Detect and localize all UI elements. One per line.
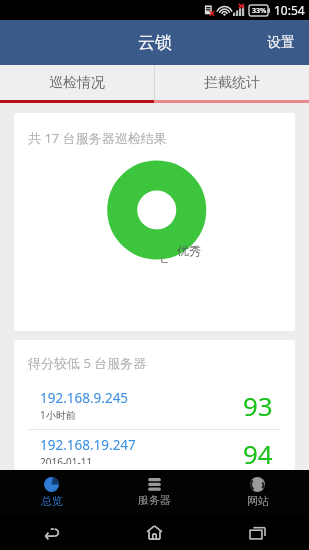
- button[interactable]: 网站: [206, 470, 309, 515]
- staticText: 192.168.9.245: [40, 389, 129, 407]
- button[interactable]: 192.168.9.245: [14, 382, 295, 429]
- staticText: 服务器: [138, 493, 171, 507]
- staticText: 192.168.19.247: [40, 436, 136, 454]
- button[interactable]: 共 17 台服务器巡检结果: [14, 113, 295, 331]
- button[interactable]: 总览: [0, 470, 103, 515]
- button[interactable]: Home: [103, 515, 206, 550]
- staticText: 共 17 台服务器巡检结果: [28, 129, 167, 147]
- button[interactable]: 192.168.19.247: [14, 430, 295, 470]
- button[interactable]: Back: [0, 515, 103, 550]
- staticText: 2016-01-11: [40, 455, 93, 464]
- staticText: 得分较低 5 台服务器: [28, 354, 147, 372]
- staticText: 总览: [41, 494, 63, 508]
- staticText: 网站: [247, 494, 269, 508]
- staticText: 设置: [267, 34, 295, 52]
- staticText: 拦截统计: [204, 74, 260, 92]
- staticText: 云锁: [138, 32, 172, 53]
- staticText: 93: [243, 388, 273, 423]
- button[interactable]: 服务器: [103, 470, 206, 515]
- staticText: 10:54: [274, 2, 305, 18]
- button[interactable]: 拦截统计: [155, 65, 309, 100]
- staticText: 33%: [252, 6, 267, 16]
- staticText: 94: [243, 436, 273, 464]
- staticText: 优秀: [177, 243, 201, 258]
- button[interactable]: 巡检情况: [0, 65, 154, 100]
- button[interactable]: Recent apps: [206, 515, 309, 550]
- button[interactable]: 设置: [253, 20, 309, 65]
- staticText: 1小时前: [40, 408, 76, 422]
- staticText: 巡检情况: [49, 74, 105, 92]
